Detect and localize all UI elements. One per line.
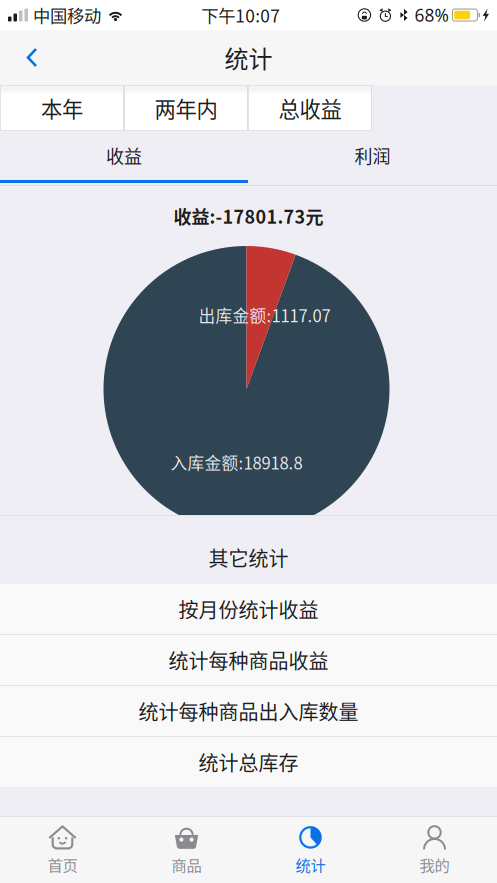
staticText: 本年 <box>41 93 83 123</box>
staticText: 统计每种商品出入库数量 <box>138 696 358 725</box>
button[interactable]: 统计 <box>248 817 372 883</box>
button[interactable]: 收益 <box>0 131 248 180</box>
staticText: 统计总库存 <box>198 747 298 776</box>
staticText: 统计 <box>224 40 272 75</box>
button[interactable]: 统计每种商品出入库数量 <box>0 686 497 736</box>
staticText: 收益:-17801.73元 <box>173 203 323 229</box>
staticText: 按月份统计收益 <box>178 594 318 623</box>
button[interactable]: 按月份统计收益 <box>0 584 497 634</box>
staticText: 统计每种商品收益 <box>168 645 328 674</box>
staticText: 利润 <box>354 142 390 169</box>
button[interactable]: 利润 <box>248 131 497 180</box>
button[interactable]: 商品 <box>124 817 248 883</box>
staticText: 商品 <box>171 853 201 876</box>
staticText: 其它统计 <box>208 543 288 572</box>
staticText: 入库金额:18918.8 <box>170 450 302 474</box>
button[interactable]: 首页 <box>0 817 124 883</box>
staticText: 首页 <box>47 853 77 876</box>
staticText: 统计 <box>295 853 325 876</box>
staticText: 中国移动 <box>33 2 101 28</box>
staticText: 我的 <box>419 853 449 876</box>
button[interactable]: 我的 <box>372 817 496 883</box>
staticText: 出库金额:1117.07 <box>198 303 330 327</box>
button[interactable]: 总收益 <box>248 85 372 131</box>
staticText: 两年内 <box>154 93 217 123</box>
staticText: 总收益 <box>278 93 341 123</box>
button[interactable]: 统计每种商品收益 <box>0 635 497 685</box>
button[interactable]: 返回 <box>10 35 54 79</box>
staticText: 收益 <box>106 142 142 169</box>
staticText: 68% <box>414 3 448 26</box>
button[interactable]: 统计总库存 <box>0 737 497 787</box>
button[interactable]: 本年 <box>0 85 124 131</box>
staticText: 下午10:07 <box>201 2 280 28</box>
button[interactable]: 两年内 <box>124 85 248 131</box>
